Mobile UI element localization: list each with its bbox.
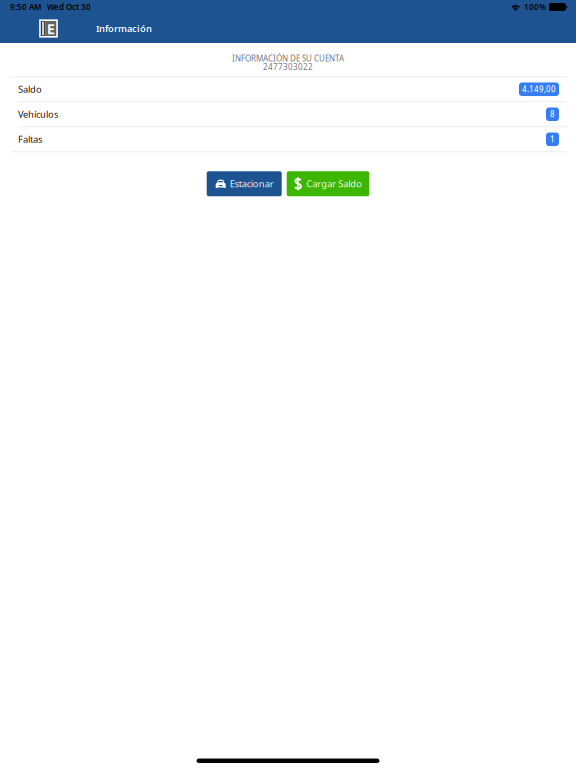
button[interactable]: Cargar Saldo — [287, 171, 369, 196]
staticText: INFORMACIÓN DE SU CUENTA — [232, 53, 344, 64]
button[interactable]: Estacionar — [207, 171, 282, 196]
staticText: Información — [96, 22, 152, 35]
staticText: 4.149,00 — [522, 84, 556, 94]
staticText: 8 — [550, 109, 555, 119]
staticText: 9:50 AM — [10, 2, 41, 12]
staticText: Vehículos — [18, 108, 58, 120]
button[interactable]: Saldo — [0, 77, 576, 102]
button[interactable]: Información — [88, 14, 160, 43]
staticText: 1 — [550, 134, 555, 144]
staticText: E — [47, 19, 55, 38]
button[interactable]: Vehículos — [0, 102, 576, 127]
staticText: Wed Oct 30 — [47, 2, 91, 12]
button[interactable]: Faltas — [0, 127, 576, 152]
staticText: Cargar Saldo — [306, 178, 362, 190]
staticText: Faltas — [18, 133, 42, 145]
staticText: Saldo — [18, 83, 42, 95]
staticText: 100% — [524, 2, 546, 12]
staticText: 2477303022 — [263, 62, 313, 72]
button[interactable]: Menu — [30, 14, 67, 43]
staticText: Estacionar — [230, 178, 274, 190]
